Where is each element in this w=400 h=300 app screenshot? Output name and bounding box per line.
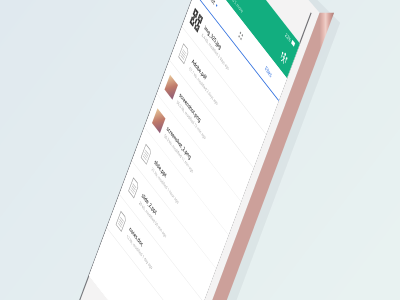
staticText: 20 kb, modified 50 min ago [138, 199, 167, 239]
staticText: slide.ppt [153, 157, 168, 179]
staticText: Chat [207, 0, 217, 7]
button[interactable]: notes.doc [107, 195, 203, 300]
staticText: screenshot_2.png [166, 124, 192, 161]
button[interactable]: slide.ppt [132, 128, 228, 269]
staticText: Files [264, 64, 273, 80]
button[interactable]: img_325.jpg [182, 0, 278, 134]
staticText: 56.3 kb, modified 11 min ago [164, 132, 194, 174]
staticText: 21 kb, modified 1 hour ago [151, 166, 179, 205]
staticText: screenshot.png [178, 90, 202, 124]
button[interactable]: screenshot_2.png [144, 94, 241, 235]
button[interactable]: Gallery grid [222, 7, 259, 65]
staticText: 56.3 kb, modified 12 min ago [176, 98, 207, 140]
button[interactable]: screenshot.png [157, 60, 253, 201]
button[interactable]: Files [250, 42, 287, 101]
button[interactable]: slide_2.ppt [119, 161, 216, 300]
staticText: img_325.jpg [204, 23, 222, 51]
staticText: Amsterdam, Bob... and 5 more [208, 0, 244, 15]
staticText: Adobe.pdf [191, 57, 208, 82]
staticText: slide_2.ppt [141, 191, 158, 216]
staticText: notes.doc [128, 224, 144, 248]
staticText: 22% [284, 31, 292, 44]
button[interactable]: Chat [194, 0, 231, 29]
staticText: 67.1 kb, modified 2 days ago [189, 65, 219, 106]
button[interactable]: Group members [278, 46, 290, 68]
staticText: 12 kb, modified 1 day ago [126, 233, 153, 270]
button[interactable]: Adobe.pdf [169, 27, 266, 168]
staticText: 6.4 kb, modified 2 days ago [201, 31, 230, 71]
